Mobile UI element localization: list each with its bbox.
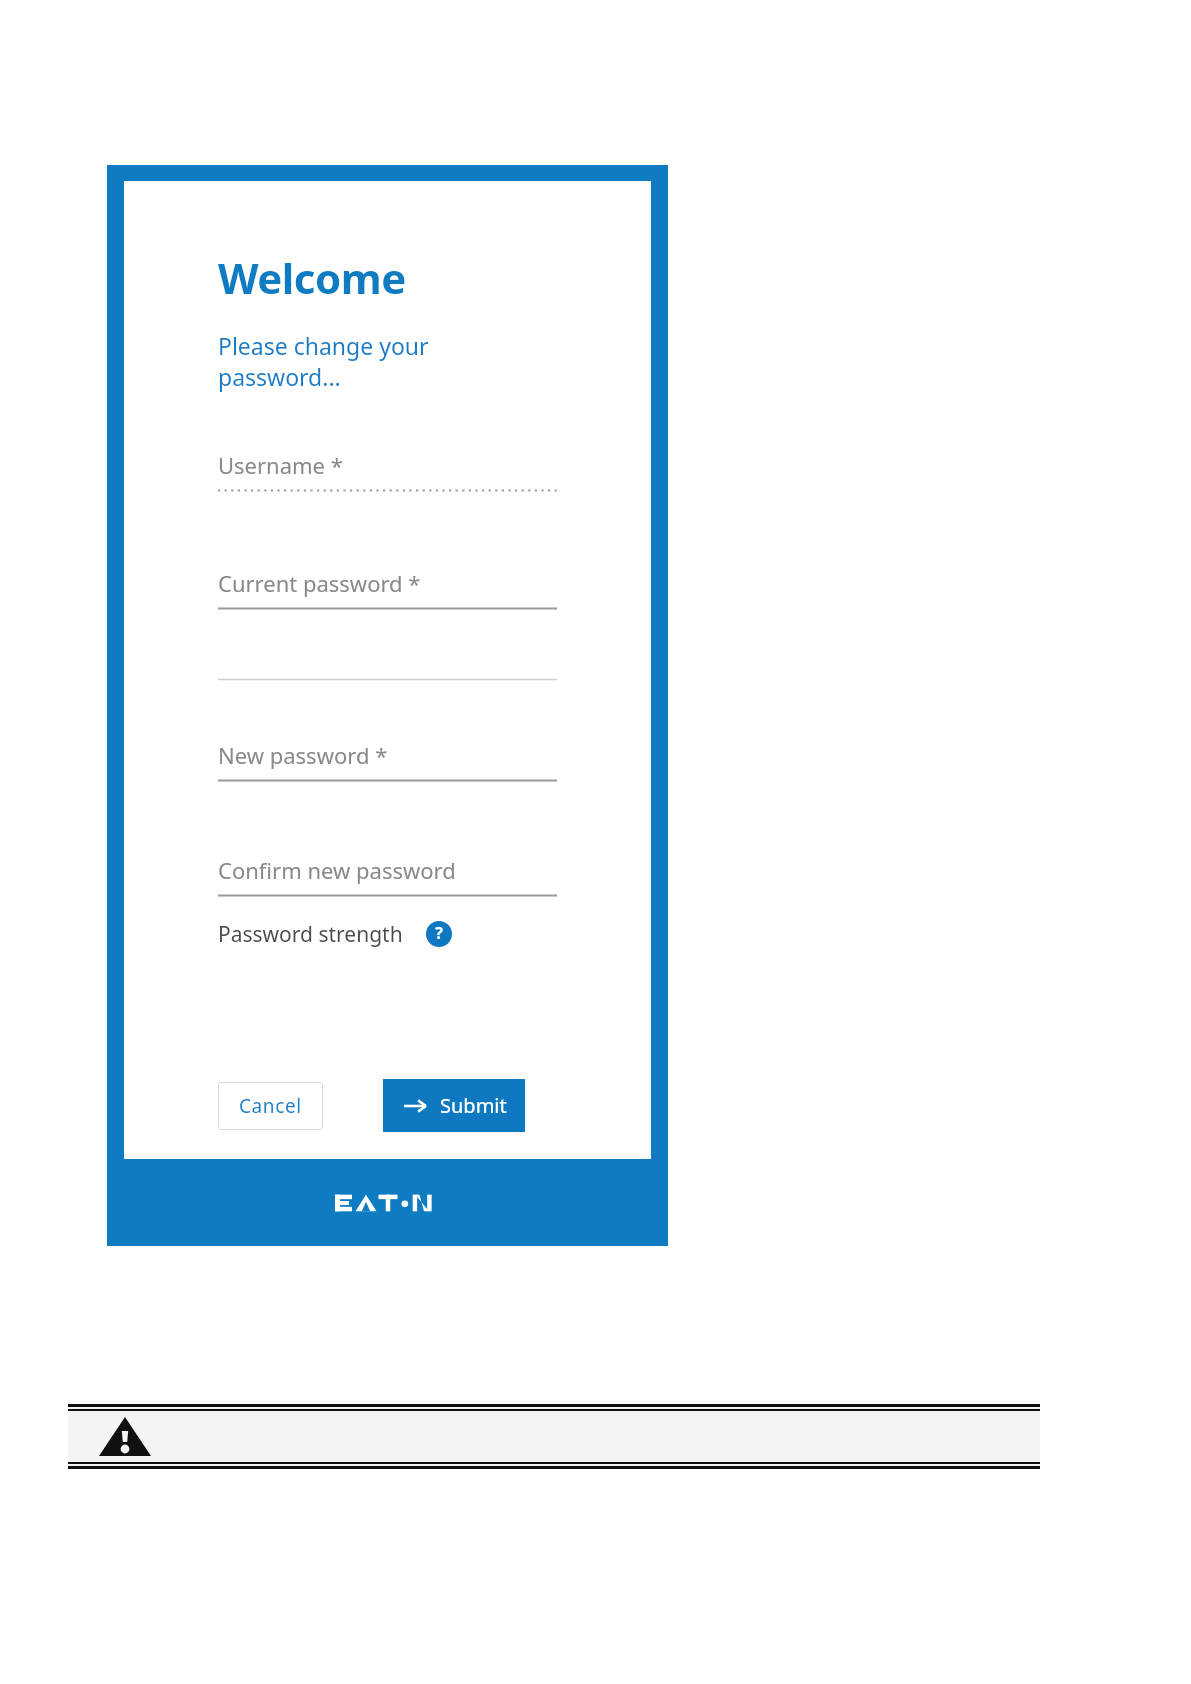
button[interactable]: Cancel <box>218 1082 323 1130</box>
staticText: New password * <box>218 740 388 770</box>
staticText: Password strength <box>218 920 403 949</box>
staticText: Submit <box>440 1092 507 1119</box>
button[interactable]: Submit <box>383 1079 525 1132</box>
staticText: Welcome <box>218 249 406 306</box>
staticText: Current password * <box>218 568 421 598</box>
staticText: Confirm new password <box>218 855 456 885</box>
staticText: Username * <box>218 450 343 480</box>
staticText: ? <box>435 922 443 944</box>
staticText: Please change your password... <box>218 330 557 392</box>
button[interactable]: Password strength help <box>424 919 454 949</box>
staticText: Cancel <box>239 1093 302 1119</box>
